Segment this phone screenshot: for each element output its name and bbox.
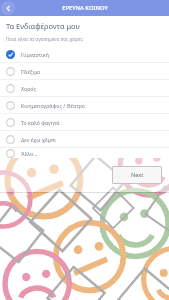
staticText: Τα Ενδιαφέροντα μου xyxy=(6,21,80,31)
staticText: Γυμναστική xyxy=(21,51,49,58)
staticText: Χορός xyxy=(21,85,36,92)
staticText: Δεν έχω χόμπι xyxy=(21,136,57,143)
staticText: Πλέξιμο xyxy=(21,68,41,75)
button[interactable]: Πλέξιμο xyxy=(0,63,169,79)
button[interactable]: Κινηματογράφος / Θέατρο xyxy=(0,97,169,113)
button[interactable]: Άλλο... xyxy=(0,148,169,158)
staticText: ΕΡΕΥΝΑ ΚΟΙΝΟΥ xyxy=(62,4,108,12)
button[interactable]: Το καλό φαγητό xyxy=(0,114,169,130)
staticText: Άλλο... xyxy=(21,150,38,157)
button[interactable]: Δεν έχω χόμπι xyxy=(0,131,169,147)
button[interactable]: Χορός xyxy=(0,80,169,96)
button[interactable]: Back xyxy=(1,1,15,15)
button[interactable]: Γυμναστική xyxy=(0,46,169,62)
staticText: Next xyxy=(131,171,144,179)
staticText: Το καλό φαγητό xyxy=(21,119,60,126)
staticText: Ποια είναι τα αγαπημένα σας χόμπι; xyxy=(6,36,84,42)
staticText: Κινηματογράφος / Θέατρο xyxy=(21,102,85,109)
button[interactable]: Next xyxy=(112,166,162,184)
